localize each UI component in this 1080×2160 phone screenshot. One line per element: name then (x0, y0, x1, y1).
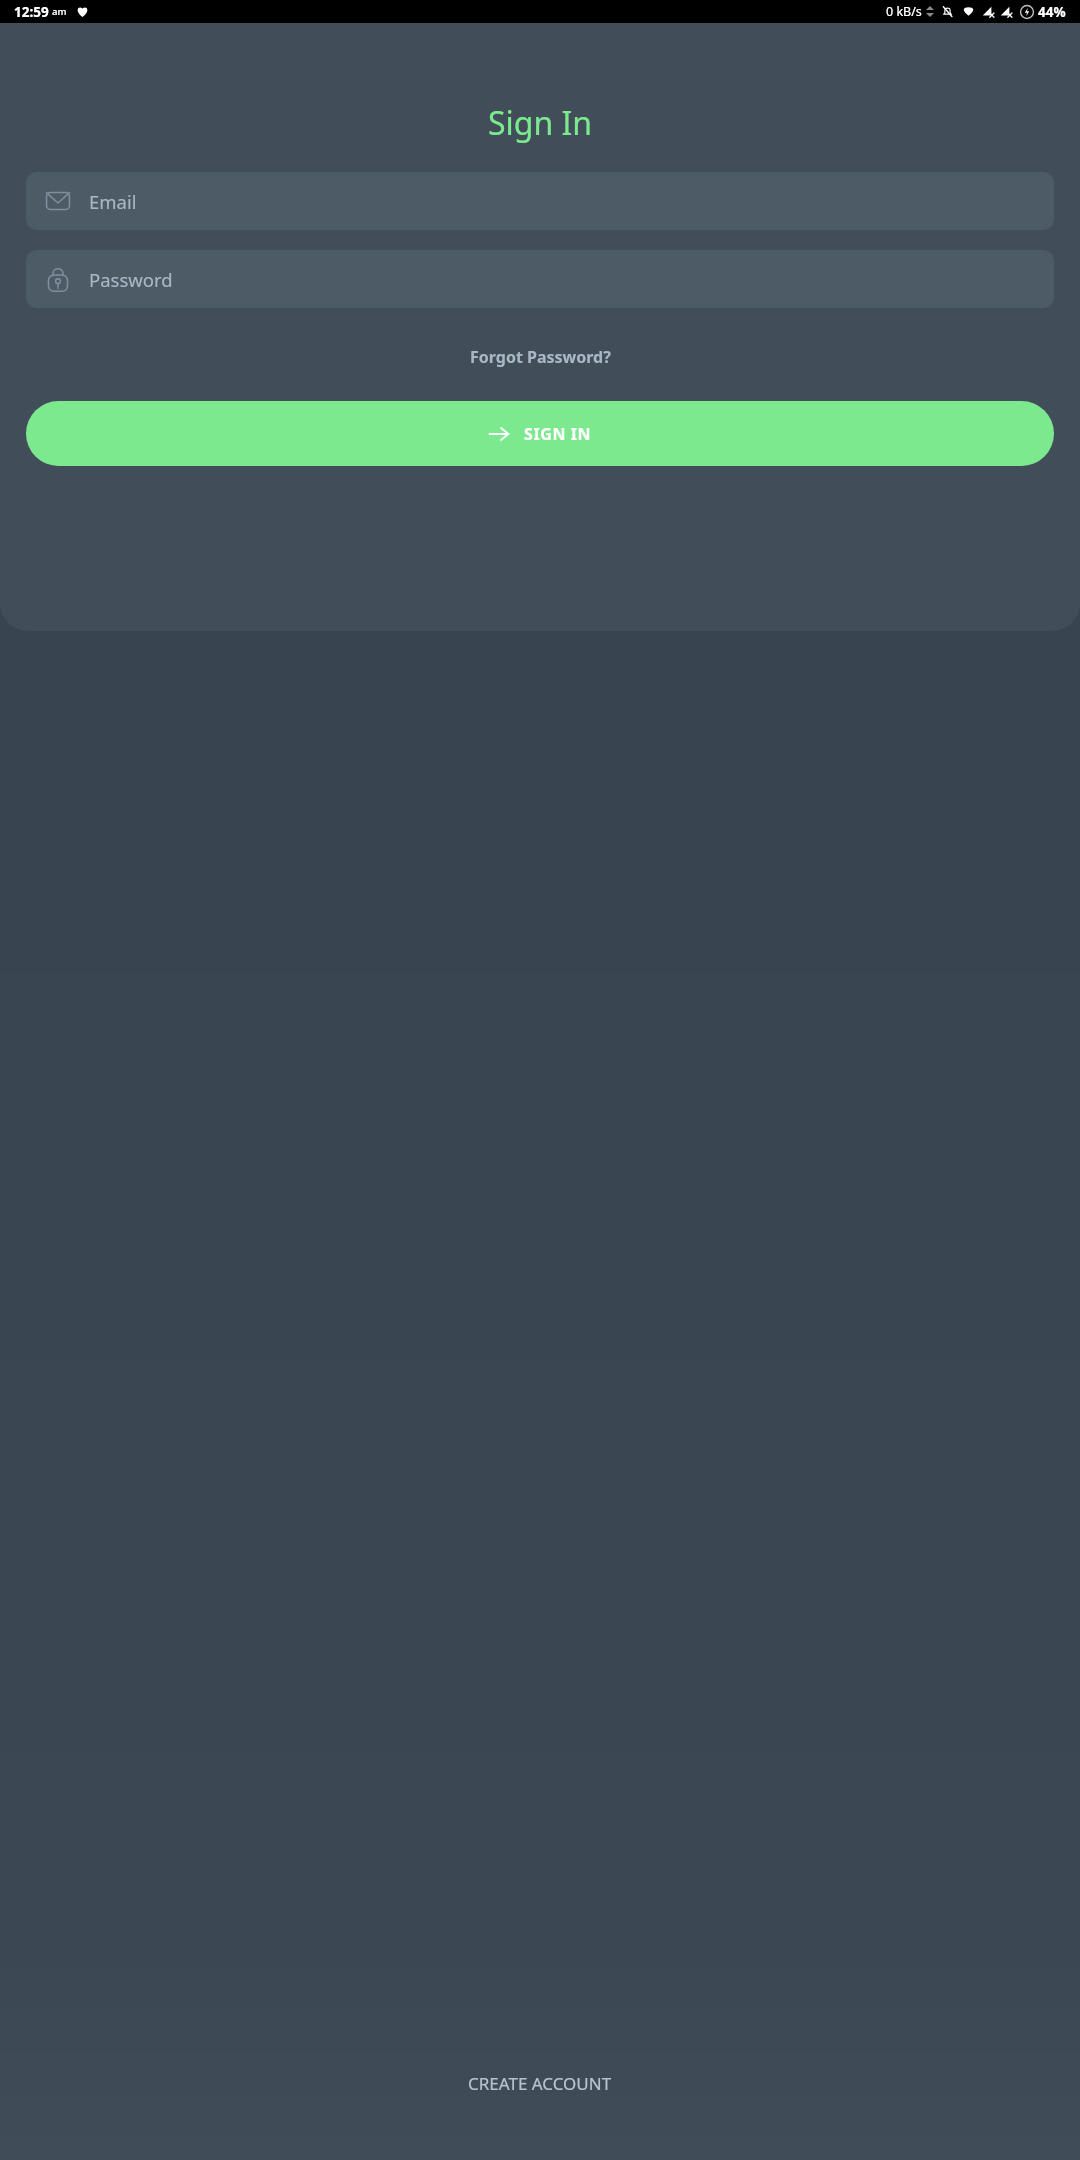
button[interactable]: CREATE ACCOUNT (450, 2062, 630, 2105)
button[interactable]: Email (26, 172, 1054, 230)
staticText: 12:59 (14, 3, 49, 21)
staticText: Sign In (0, 101, 1080, 145)
staticText: 44% (1038, 3, 1066, 21)
button[interactable]: Password (26, 250, 1054, 308)
staticText: am (52, 5, 67, 18)
staticText: 0 kB/s (886, 3, 922, 20)
staticText: Email (89, 189, 137, 214)
staticText: Password (89, 267, 173, 292)
button[interactable]: Forgot Password? (456, 338, 625, 376)
button[interactable]: SIGN IN (26, 401, 1054, 466)
staticText: SIGN IN (524, 423, 592, 445)
